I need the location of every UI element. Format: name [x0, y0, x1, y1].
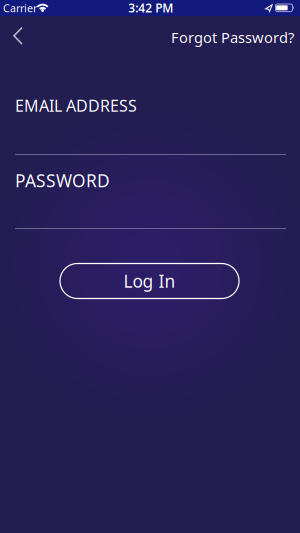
staticText: Forgot Password? [171, 27, 294, 47]
button[interactable]: Password [15, 169, 286, 229]
staticText: Carrier [3, 1, 37, 15]
button[interactable]: Forgot Password? [165, 21, 300, 53]
staticText: 3:42 PM [128, 0, 173, 16]
button[interactable]: Email address [15, 95, 286, 155]
staticText: EMAIL ADDRESS [15, 95, 137, 116]
staticText: Log In [123, 269, 175, 292]
button[interactable]: Log In [60, 263, 239, 298]
staticText: PASSWORD [15, 169, 110, 192]
button[interactable]: Back [5, 19, 32, 52]
